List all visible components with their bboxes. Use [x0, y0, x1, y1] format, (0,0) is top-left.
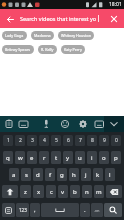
staticText: 7 [79, 137, 82, 144]
staticText: 9 [103, 137, 106, 144]
staticText: s [25, 171, 28, 179]
staticText: Katy Perry [64, 47, 82, 52]
staticText: h [72, 171, 76, 179]
staticText: 4 [43, 137, 46, 144]
button[interactable] [104, 203, 122, 217]
button[interactable]: 4 [39, 135, 49, 146]
button[interactable]: y [63, 151, 73, 164]
staticText: y [66, 154, 70, 162]
staticText: i [91, 154, 93, 162]
button[interactable]: , [30, 203, 40, 217]
staticText: 18:01 [109, 1, 122, 8]
button[interactable]: x [33, 185, 44, 198]
staticText: . [84, 206, 86, 214]
button[interactable] [104, 116, 124, 132]
staticText: x [37, 188, 41, 196]
button[interactable]: q [3, 151, 13, 164]
button[interactable]: n [82, 185, 92, 198]
button[interactable]: m [94, 185, 104, 198]
staticText: n [85, 188, 89, 196]
staticText: Search videos that interest yo [20, 15, 97, 22]
button[interactable]: .vn [91, 203, 103, 217]
button[interactable]: c [46, 185, 56, 198]
button[interactable]: 1 [3, 135, 13, 146]
staticText: m [96, 188, 102, 196]
staticText: a [12, 171, 16, 179]
staticText: v [61, 188, 65, 196]
button[interactable]: 2 [15, 135, 25, 146]
staticText: b [73, 188, 77, 196]
staticText: Lady Gaga [5, 33, 24, 38]
button[interactable]: w [15, 151, 25, 164]
staticText: Whitney Houston [61, 33, 91, 38]
staticText: e [30, 154, 34, 162]
staticText: 0 [115, 137, 118, 144]
button[interactable]: l [105, 168, 115, 181]
staticText: f [49, 171, 52, 179]
button[interactable]: o [99, 151, 109, 164]
staticText: 8 [91, 137, 94, 144]
staticText: 123 [19, 207, 27, 213]
button[interactable]: k [93, 168, 103, 181]
staticText: j [85, 171, 87, 179]
button[interactable]: 123 [16, 203, 29, 217]
button[interactable]: b [70, 185, 80, 198]
button[interactable]: u [75, 151, 85, 164]
button[interactable]: p [111, 151, 121, 164]
staticText: o [102, 154, 106, 162]
button[interactable] [5, 14, 15, 24]
staticText: 1 [7, 137, 10, 144]
button[interactable] [2, 203, 15, 217]
button[interactable]: . [80, 203, 90, 217]
button[interactable]: Lady Gaga [2, 31, 27, 40]
button[interactable]: t [51, 151, 61, 164]
button[interactable]: 6 [63, 135, 73, 146]
button[interactable]: e [27, 151, 37, 164]
button[interactable] [2, 185, 18, 198]
staticText: r [43, 154, 46, 162]
button[interactable]: 7 [75, 135, 85, 146]
button[interactable]: a [9, 168, 19, 181]
button[interactable]: z [20, 185, 31, 198]
staticText: w [18, 154, 23, 162]
button[interactable]: R. Kelly [38, 45, 57, 54]
staticText: l [109, 171, 111, 179]
staticText: d [36, 171, 40, 179]
button[interactable]: f [45, 168, 55, 181]
button[interactable]: 9 [99, 135, 109, 146]
button[interactable]: s [21, 168, 31, 181]
button[interactable]: Whitney Houston [58, 31, 94, 40]
button[interactable] [41, 203, 79, 217]
button[interactable] [106, 185, 122, 198]
staticText: .vn [94, 208, 100, 213]
button[interactable]: v [58, 185, 68, 198]
button[interactable]: d [33, 168, 43, 181]
staticText: k [96, 171, 100, 179]
button[interactable]: i [87, 151, 97, 164]
button[interactable]: 8 [87, 135, 97, 146]
staticText: q [6, 154, 10, 162]
button[interactable] [109, 14, 119, 24]
staticText: c [50, 188, 53, 196]
staticText: Britney Spears [5, 47, 31, 52]
staticText: z [24, 188, 27, 196]
button[interactable]: Madonna [31, 31, 54, 40]
button[interactable]: g [57, 168, 67, 181]
button[interactable]: 3 [27, 135, 37, 146]
staticText: t [55, 154, 58, 162]
button[interactable]: j [81, 168, 91, 181]
staticText: , [34, 206, 36, 214]
staticText: u [78, 154, 82, 162]
button[interactable]: r [39, 151, 49, 164]
staticText: Madonna [34, 33, 51, 38]
button[interactable]: Britney Spears [2, 45, 34, 54]
button[interactable]: 5 [51, 135, 61, 146]
staticText: 3 [31, 137, 34, 144]
staticText: 6 [67, 137, 70, 144]
button[interactable]: Katy Perry [61, 45, 85, 54]
button[interactable]: h [69, 168, 79, 181]
staticText: p [114, 154, 118, 162]
button[interactable]: 0 [111, 135, 121, 146]
staticText: R. Kelly [41, 47, 54, 52]
staticText: 5 [55, 137, 58, 144]
